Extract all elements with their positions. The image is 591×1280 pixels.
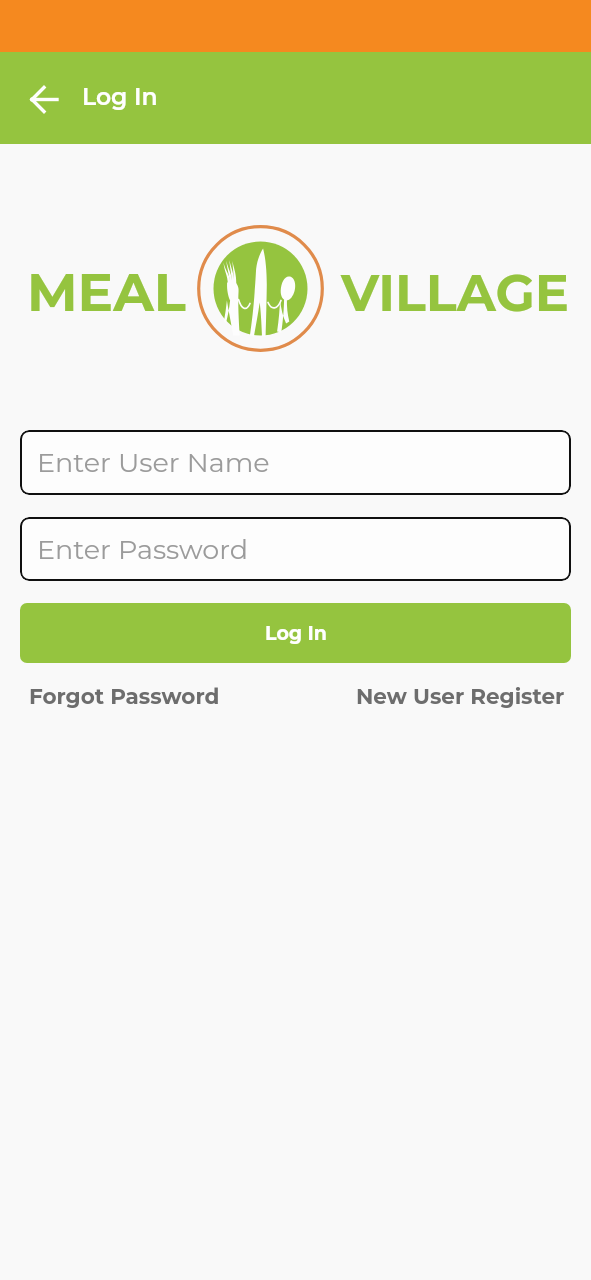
staticText: Log In <box>265 622 327 645</box>
staticText: Enter Password <box>37 533 249 566</box>
button[interactable]: Enter User Name <box>20 430 571 495</box>
button[interactable]: Back <box>20 75 68 123</box>
staticText: Log In <box>82 82 158 111</box>
staticText: VILLAGE <box>341 262 569 324</box>
button[interactable]: Enter Password <box>20 517 571 581</box>
button[interactable]: Forgot Password <box>29 676 220 716</box>
staticText: Forgot Password <box>29 683 220 709</box>
button[interactable]: New User Register <box>356 676 565 716</box>
button[interactable]: Log In <box>20 603 571 663</box>
staticText: Enter User Name <box>37 446 270 479</box>
staticText: New User Register <box>356 683 565 709</box>
staticText: MEAL <box>27 260 186 325</box>
